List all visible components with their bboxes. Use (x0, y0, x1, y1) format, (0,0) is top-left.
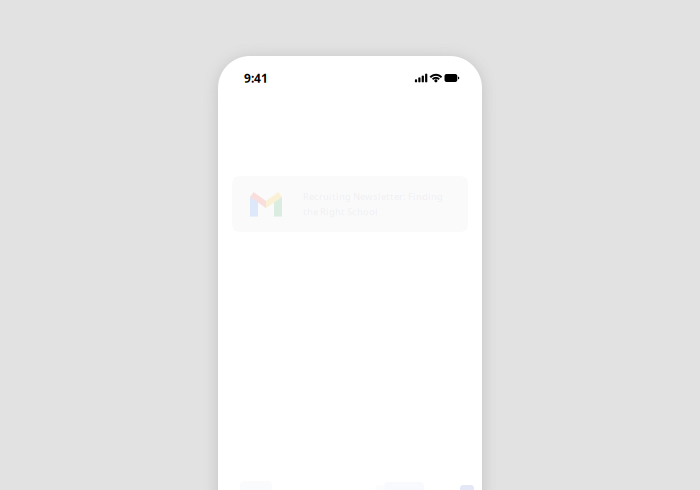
button[interactable]: Recruiting Newsletter: Finding the Right… (232, 176, 468, 232)
button[interactable]: Compose (460, 485, 474, 490)
staticText: 9:41 (244, 70, 268, 86)
